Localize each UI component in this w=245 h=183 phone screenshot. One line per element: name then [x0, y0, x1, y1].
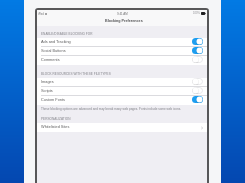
staticText: PERSONALIZATION	[41, 117, 71, 120]
button[interactable]: Disabled toggle	[192, 56, 203, 63]
staticText: BLOCK RESOURCES WITH THESE FILETYPES	[41, 72, 111, 75]
staticText: Images	[41, 80, 54, 84]
staticText: Custom Fonts	[41, 98, 65, 102]
staticText: Ads and Tracking	[41, 40, 71, 44]
staticText: ENABLE/DISABLE BLOCKING FOR	[41, 32, 93, 35]
button[interactable]: Enabled toggle	[192, 47, 203, 54]
button[interactable]: Whitelisted Sites	[37, 123, 207, 132]
staticText: Whitelisted Sites	[41, 125, 70, 129]
staticText: 100%	[193, 12, 200, 15]
button[interactable]: Images	[37, 78, 207, 87]
button[interactable]: Disabled toggle	[192, 87, 203, 94]
button[interactable]: Disabled toggle	[192, 78, 203, 85]
staticText: Social Buttons	[41, 49, 66, 53]
button[interactable]: Scripts	[37, 87, 207, 96]
button[interactable]: Custom Fonts	[37, 96, 207, 105]
staticText: 9:41 AM	[117, 12, 128, 15]
staticText: iPad	[38, 12, 44, 15]
button[interactable]: Ads and Tracking	[37, 38, 207, 47]
button[interactable]: Comments	[37, 56, 207, 65]
staticText: Scripts	[41, 89, 53, 93]
staticText: Blocking Preferences	[105, 19, 143, 23]
button[interactable]: Enabled toggle	[192, 38, 203, 45]
staticText: These blocking options are advanced and …	[41, 107, 182, 110]
button[interactable]: Social Buttons	[37, 47, 207, 56]
button[interactable]: Enabled toggle	[192, 96, 203, 103]
staticText: Comments	[41, 58, 60, 62]
